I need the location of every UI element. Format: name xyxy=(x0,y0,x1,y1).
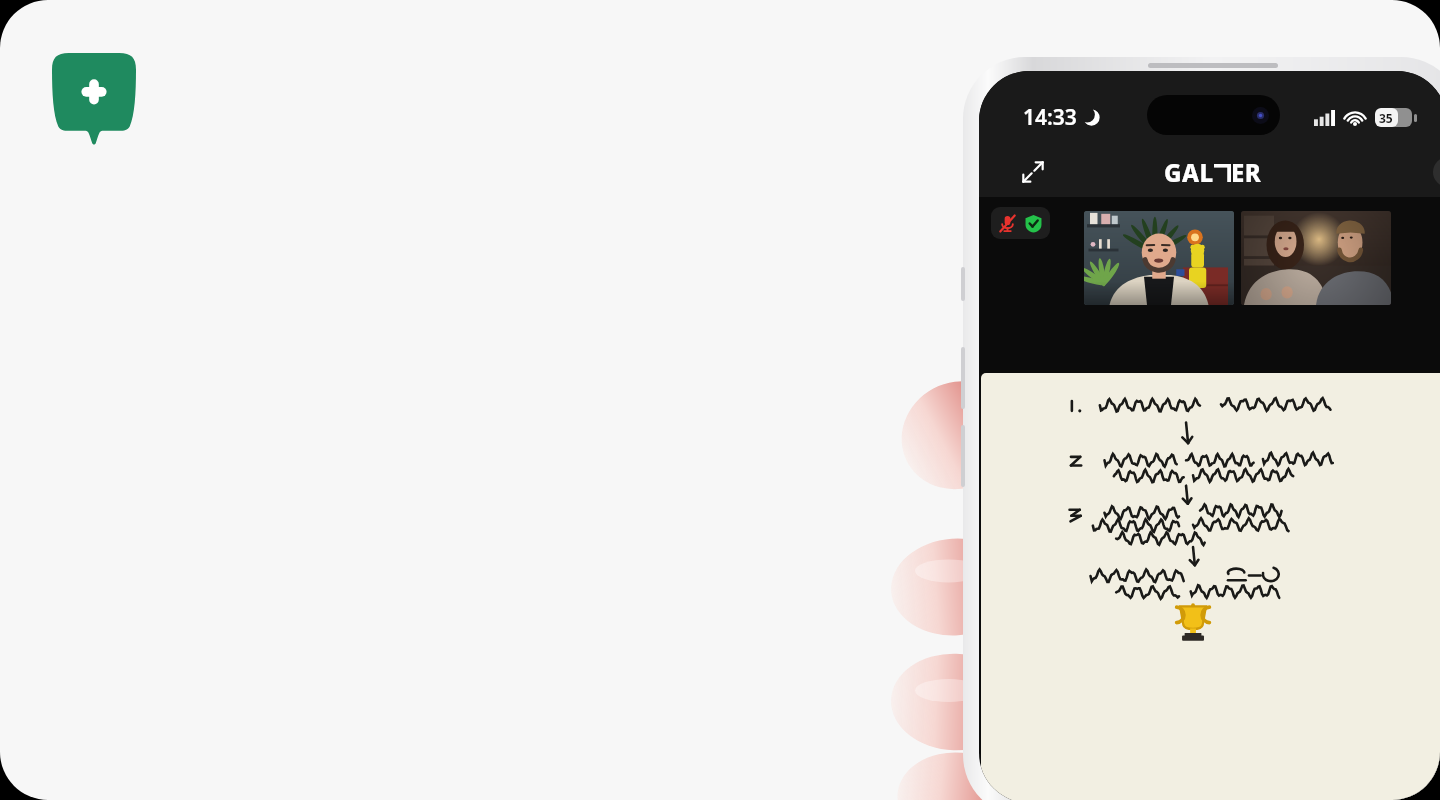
staticText: GAL xyxy=(1164,156,1214,189)
button[interactable]: Collapse xyxy=(1013,152,1053,192)
button[interactable] xyxy=(1241,211,1391,305)
button[interactable] xyxy=(981,373,1440,800)
button[interactable]: Galter badge logo xyxy=(52,53,136,145)
button[interactable]: More options xyxy=(1433,157,1440,187)
button[interactable] xyxy=(1084,211,1234,305)
button[interactable]: Microphone muted xyxy=(998,214,1017,233)
button[interactable]: Connection secured xyxy=(1024,214,1043,233)
staticText: 14:33 xyxy=(1023,103,1077,132)
staticText: ER xyxy=(1231,156,1262,189)
staticText: 35 xyxy=(1379,110,1393,126)
